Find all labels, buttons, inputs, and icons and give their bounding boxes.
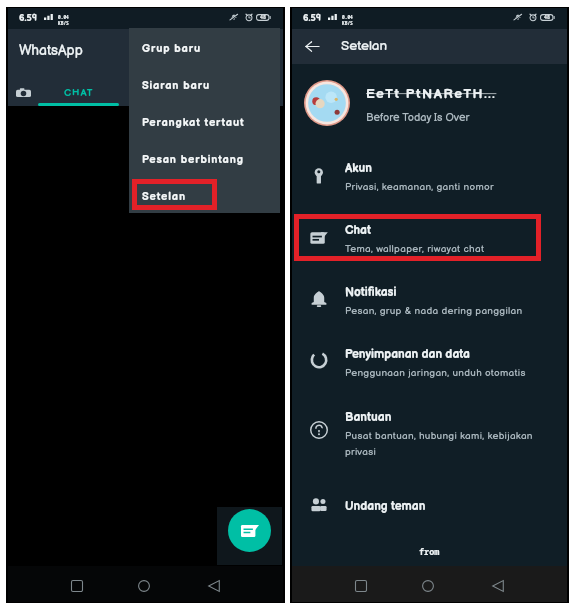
button[interactable]: Back: [478, 568, 518, 604]
staticText: 0.04: [58, 14, 69, 20]
button[interactable]: Perangkat tertaut: [129, 104, 280, 140]
button[interactable]: Grup baru: [129, 30, 280, 66]
staticText: Undang teman: [345, 499, 426, 513]
button[interactable]: Siaran baru: [129, 67, 280, 103]
staticText: Notifikasi: [345, 285, 397, 299]
staticText: 48: [260, 14, 267, 21]
button[interactable]: Back: [194, 568, 234, 604]
button[interactable]: Chat: [292, 222, 567, 264]
staticText: Privasi, keamanan, ganti nomor: [345, 181, 494, 193]
button[interactable]: CHAT: [38, 80, 120, 106]
button[interactable]: EeTt PtNAReTH…: [292, 72, 567, 145]
staticText: 0.04: [342, 14, 353, 20]
staticText: Pesan, grup & nada dering panggilan: [345, 305, 523, 317]
button[interactable]: Undang teman: [292, 498, 567, 528]
button[interactable]: Recents: [57, 568, 97, 604]
staticText: Setelan: [142, 190, 186, 203]
staticText: KB/S: [58, 20, 69, 26]
button[interactable]: Penyimpanan dan data: [292, 346, 567, 388]
staticText: Setelan: [341, 38, 388, 54]
staticText: EeTt PtNAReTH…: [366, 86, 497, 102]
button[interactable]: Bantuan: [292, 409, 567, 463]
button[interactable]: Camera: [8, 80, 38, 106]
staticText: Perangkat tertaut: [142, 116, 245, 129]
staticText: Pesan berbintang: [142, 153, 244, 166]
staticText: CHAT: [64, 87, 94, 99]
button[interactable]: Back: [292, 29, 332, 64]
staticText: Before Today Is Over: [366, 111, 470, 124]
staticText: 48: [544, 14, 551, 21]
button[interactable]: Setelan: [129, 178, 280, 214]
staticText: Siaran baru: [142, 79, 210, 92]
staticText: Grup baru: [142, 42, 201, 55]
staticText: Chat: [345, 223, 371, 237]
staticText: Penyimpanan dan data: [345, 347, 470, 361]
button[interactable]: New chat: [228, 509, 271, 552]
button[interactable]: Akun: [292, 160, 567, 202]
staticText: KB/S: [342, 20, 353, 26]
staticText: 6.59: [303, 13, 321, 24]
staticText: WhatsApp: [19, 42, 83, 59]
staticText: Pusat bantuan, hubungi kami, kebijakan p…: [345, 430, 533, 458]
staticText: from: [419, 546, 440, 558]
button[interactable]: Pesan berbintang: [129, 141, 280, 177]
button[interactable]: Recents: [341, 568, 381, 604]
staticText: Penggunaan jaringan, unduh otomatis: [345, 367, 526, 379]
staticText: Akun: [345, 161, 372, 175]
button[interactable]: Home: [124, 568, 164, 604]
staticText: 6.59: [19, 13, 37, 24]
staticText: Bantuan: [345, 410, 392, 424]
button[interactable]: Notifikasi: [292, 284, 567, 326]
staticText: Tema, wallpaper, riwayat chat: [345, 243, 485, 255]
button[interactable]: Home: [408, 568, 448, 604]
